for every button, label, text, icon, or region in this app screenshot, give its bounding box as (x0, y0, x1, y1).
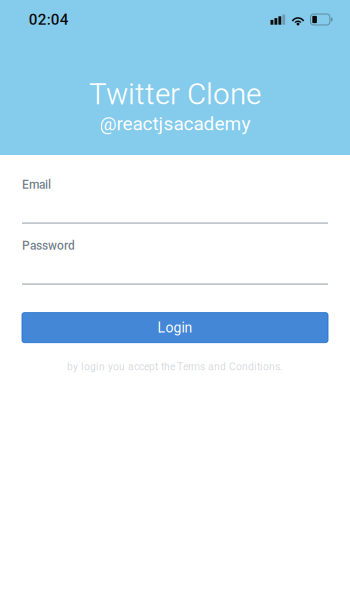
staticText: Login (157, 319, 192, 336)
staticText: 02:04 (29, 11, 69, 28)
staticText: Email (22, 178, 51, 192)
button[interactable]: Email (22, 178, 328, 224)
button[interactable]: by login you accept the Terms and Condit… (22, 361, 328, 373)
staticText: @reactjsacademy (99, 113, 250, 135)
staticText: by login you accept the Terms and Condit… (67, 361, 283, 373)
button[interactable]: Password (22, 239, 328, 285)
button[interactable]: Login (22, 313, 328, 343)
staticText: Twitter Clone (89, 77, 261, 112)
staticText: Password (22, 239, 75, 253)
